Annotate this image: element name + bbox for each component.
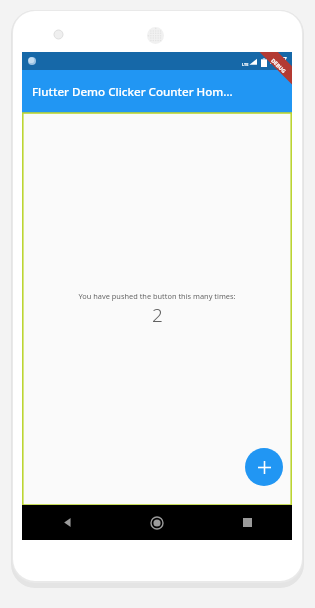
button[interactable]: Home: [112, 505, 202, 540]
button[interactable]: Recents: [202, 505, 292, 540]
staticText: You have pushed the button this many tim…: [78, 291, 236, 301]
button[interactable]: Increment: [245, 448, 283, 486]
staticText: 2: [152, 302, 163, 328]
staticText: DEBUG: [270, 57, 288, 74]
staticText: 3:37: [270, 55, 287, 67]
button[interactable]: Back: [22, 505, 112, 540]
staticText: Flutter Demo Clicker Counter Hom…: [32, 84, 233, 100]
staticText: LTE: [242, 62, 249, 67]
